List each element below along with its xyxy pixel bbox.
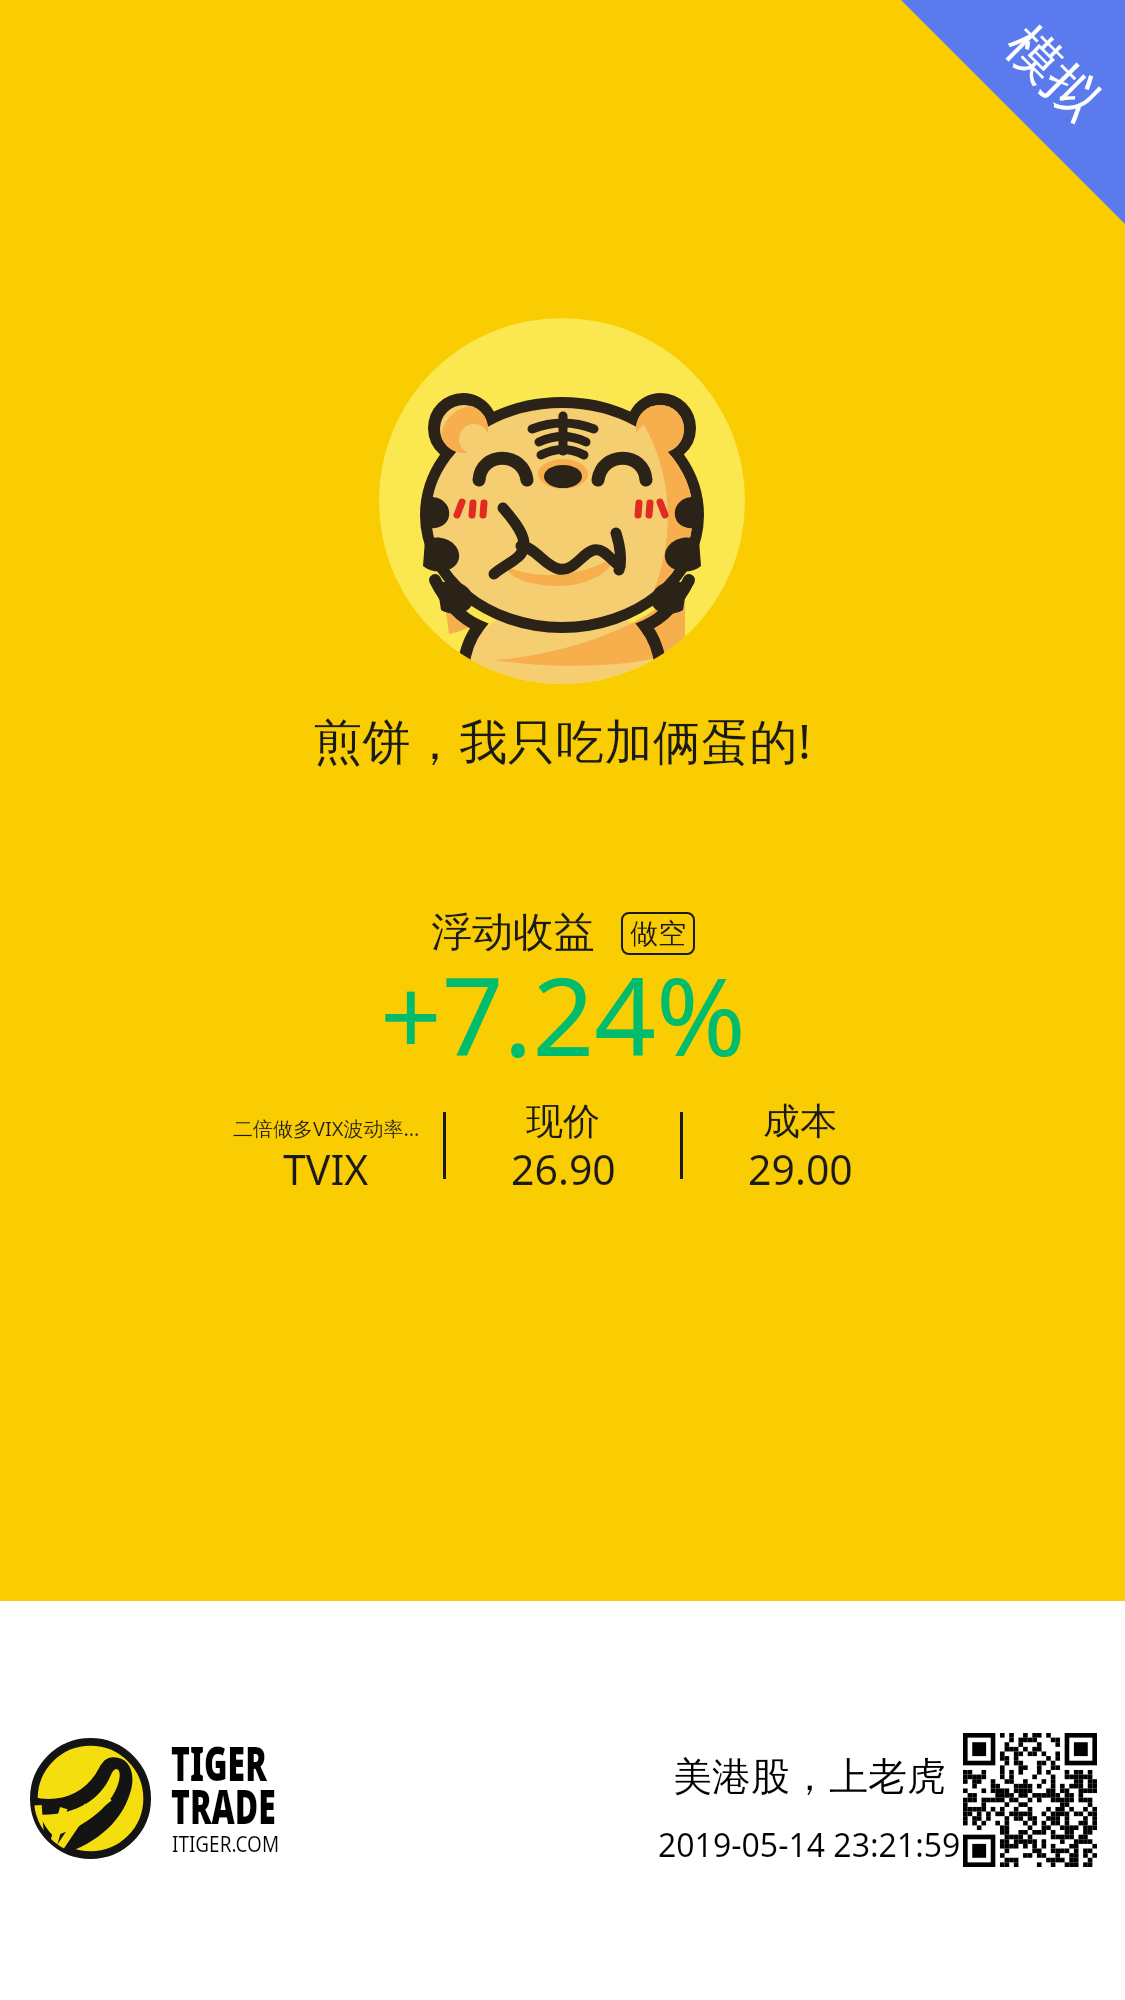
staticText: 现价 [526, 1098, 600, 1145]
staticText: 二倍做多VIX波动率… [233, 1115, 420, 1142]
staticText: TRADE [171, 1774, 276, 1838]
staticText: 成本 [763, 1098, 837, 1145]
staticText: +7.24% [380, 941, 746, 1088]
staticText: 美港股，上老虎 [673, 1752, 946, 1801]
staticText: 26.90 [511, 1141, 616, 1197]
staticText: 浮动收益 [431, 907, 595, 959]
staticText: 做空 [630, 916, 686, 951]
staticText: 29.00 [748, 1141, 853, 1197]
staticText: 煎饼，我只吃加俩蛋的! [314, 708, 812, 774]
staticText: ITIGER.COM [172, 1828, 279, 1858]
staticText: 2019-05-14 23:21:59 [658, 1823, 961, 1867]
staticText: 模拟 [992, 13, 1112, 133]
staticText: TIGER [171, 1731, 267, 1795]
staticText: TVIX [283, 1141, 369, 1197]
other: 模拟 [901, 0, 1125, 224]
